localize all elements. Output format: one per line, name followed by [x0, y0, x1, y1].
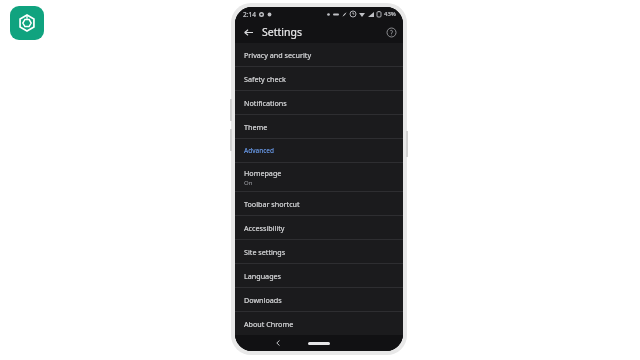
staticText: Homepage: [244, 168, 282, 178]
button[interactable]: ChatGPT: [10, 6, 44, 40]
button[interactable]: Safety check: [235, 67, 403, 90]
button[interactable]: Theme: [235, 115, 403, 138]
staticText: Advanced: [244, 146, 274, 155]
staticText: Notifications: [244, 98, 287, 108]
button[interactable]: Notifications: [235, 91, 403, 114]
button[interactable]: Downloads: [235, 288, 403, 311]
button[interactable]: Home: [308, 342, 330, 345]
staticText: Safety check: [244, 74, 286, 84]
button[interactable]: Help and feedback: [383, 24, 399, 40]
button[interactable]: Site settings: [235, 240, 403, 263]
button[interactable]: Navigate up: [239, 23, 257, 41]
staticText: Toolbar shortcut: [244, 199, 300, 209]
staticText: Languages: [244, 271, 282, 281]
button[interactable]: Advanced: [235, 139, 403, 162]
button[interactable]: About Chrome: [235, 312, 403, 335]
staticText: Site settings: [244, 247, 286, 257]
staticText: Downloads: [244, 295, 282, 305]
button[interactable]: Toolbar shortcut: [235, 192, 403, 215]
button[interactable]: Back: [271, 336, 285, 350]
staticText: 43%: [384, 10, 396, 18]
staticText: Accessibility: [244, 223, 285, 233]
staticText: About Chrome: [244, 319, 294, 329]
button[interactable]: Homepage: [235, 163, 403, 191]
button[interactable]: Accessibility: [235, 216, 403, 239]
button[interactable]: Languages: [235, 264, 403, 287]
staticText: On: [244, 179, 253, 187]
button[interactable]: Privacy and security: [235, 43, 403, 66]
staticText: Theme: [244, 122, 268, 132]
staticText: Privacy and security: [244, 50, 312, 60]
staticText: Settings: [262, 25, 302, 39]
staticText: 2:14: [243, 10, 256, 19]
